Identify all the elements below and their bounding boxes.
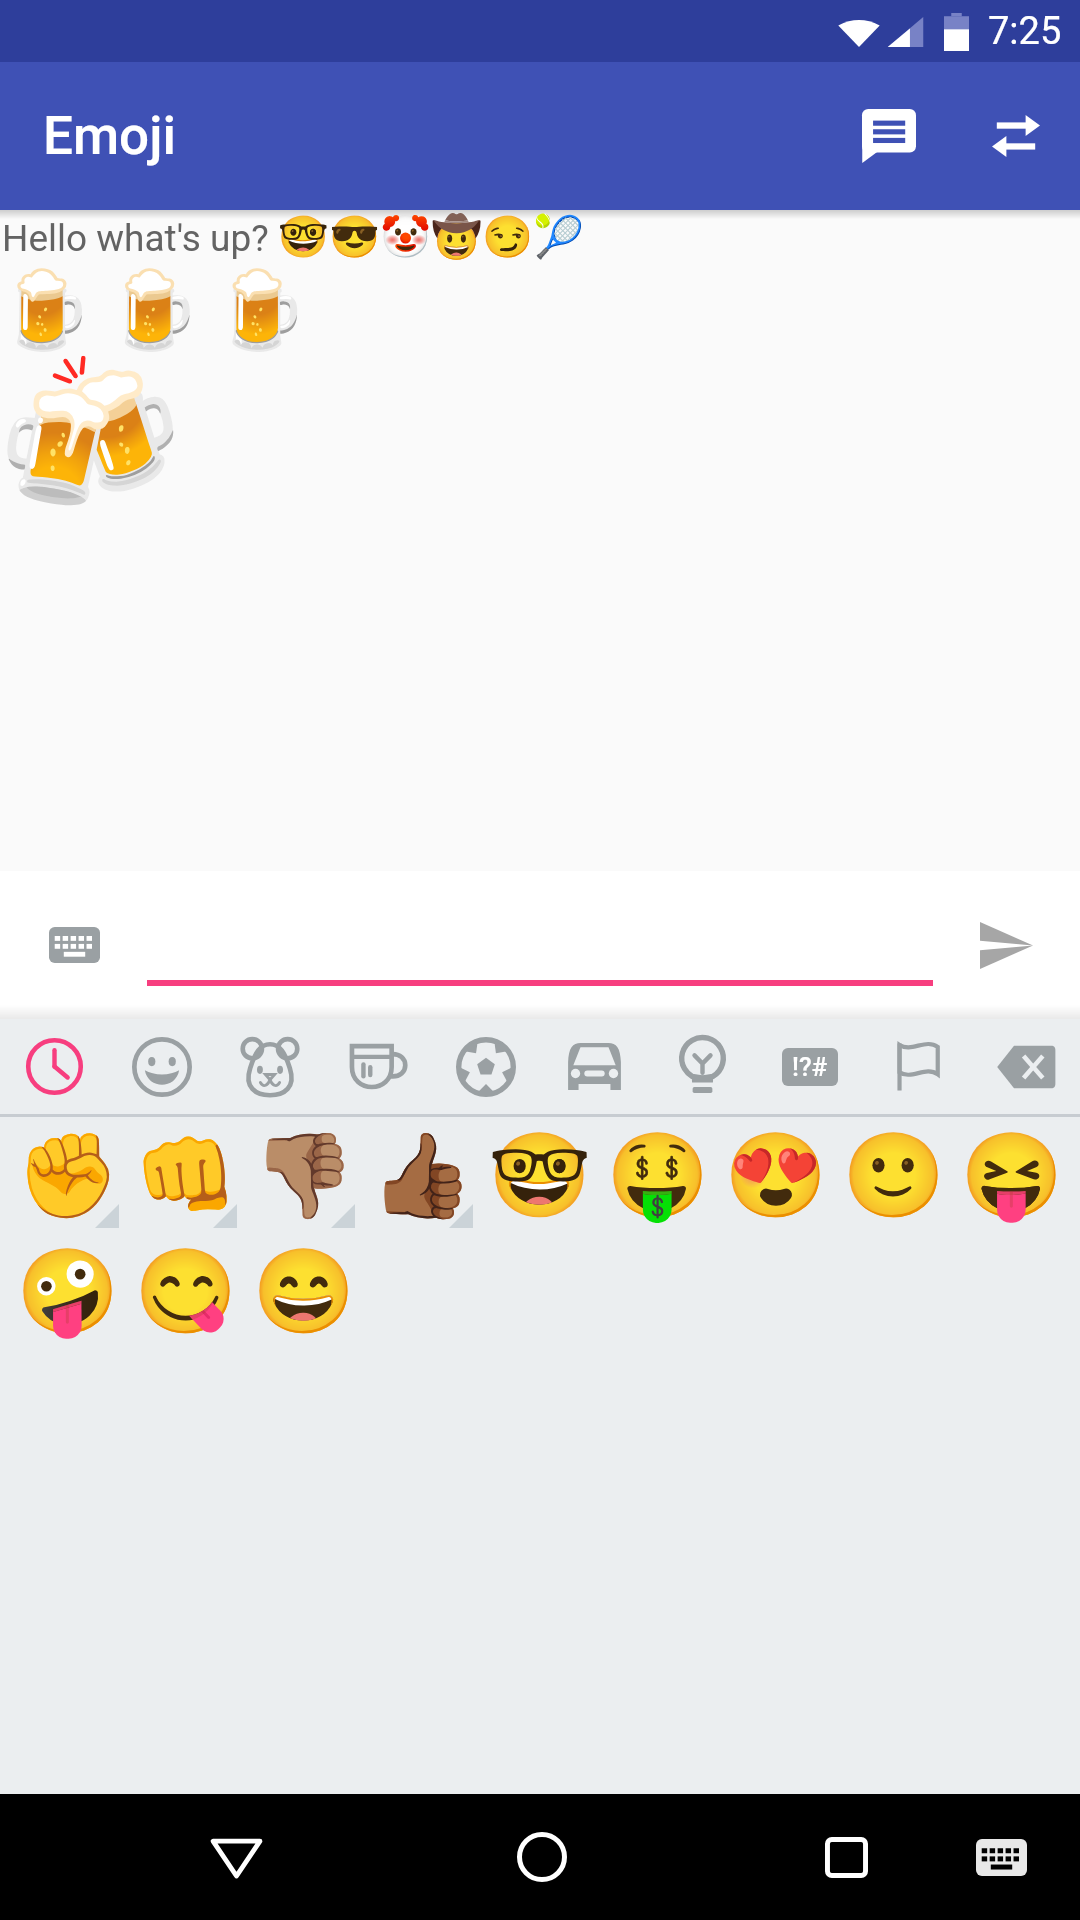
button[interactable]: Sports	[432, 1019, 540, 1114]
button[interactable]: Recent	[0, 1019, 108, 1114]
button[interactable]: Emoji	[481, 1117, 599, 1233]
staticText: 😍	[724, 1127, 828, 1224]
button[interactable]: Change keyboard	[936, 1794, 1066, 1920]
button[interactable]: Emoji	[363, 1117, 481, 1233]
button[interactable]: Emoji	[599, 1117, 717, 1233]
staticText: 👍🏾	[370, 1127, 474, 1224]
button[interactable]: Symbols	[756, 1019, 864, 1114]
staticText: 🤓	[488, 1127, 592, 1224]
staticText: 🍺🍺🍺	[0, 265, 321, 354]
button[interactable]: Messages	[826, 73, 952, 199]
button[interactable]: Recents	[768, 1794, 924, 1920]
staticText: ✊	[16, 1127, 120, 1224]
button[interactable]: Delete	[972, 1019, 1080, 1114]
button[interactable]: Emoji	[245, 1233, 363, 1349]
button[interactable]: Food and drink	[324, 1019, 432, 1114]
button[interactable]: Send	[953, 908, 1060, 982]
button[interactable]: Emoji	[717, 1117, 835, 1233]
staticText: 😄	[252, 1243, 356, 1340]
button[interactable]: Back	[158, 1794, 314, 1920]
staticText: 7:25	[988, 9, 1062, 54]
button[interactable]: Emoji	[953, 1117, 1071, 1233]
button[interactable]: Switch keyboard	[952, 72, 1080, 200]
staticText: 🤪	[16, 1243, 120, 1340]
button[interactable]: Keyboard	[26, 914, 122, 976]
button[interactable]: Emoji	[835, 1117, 953, 1233]
staticText: 🤑	[606, 1127, 710, 1224]
button[interactable]: Flags	[864, 1019, 972, 1114]
button[interactable]: Emoji	[245, 1117, 363, 1233]
staticText: 🙂	[842, 1127, 946, 1224]
button[interactable]: Emoji	[9, 1117, 127, 1233]
button[interactable]: Travel	[540, 1019, 648, 1114]
staticText: Hello what's up? 🤓😎🤡🤠😏🎾	[2, 213, 585, 261]
staticText: 👎🏽	[252, 1127, 356, 1224]
button[interactable]: Emoji	[127, 1233, 245, 1349]
button[interactable]: Emoji	[9, 1233, 127, 1349]
staticText: 😝	[960, 1127, 1064, 1224]
button[interactable]: Animals	[216, 1019, 324, 1114]
button[interactable]: Home	[464, 1794, 620, 1920]
button[interactable]: Smileys	[108, 1019, 216, 1114]
staticText: 🍻	[0, 348, 183, 524]
staticText: 👊	[134, 1127, 238, 1224]
button[interactable]: Objects	[648, 1019, 756, 1114]
button[interactable]: Emoji	[127, 1117, 245, 1233]
staticText: Emoji	[43, 105, 176, 167]
staticText: !?#	[792, 1052, 828, 1082]
staticText: 😋	[134, 1243, 238, 1340]
